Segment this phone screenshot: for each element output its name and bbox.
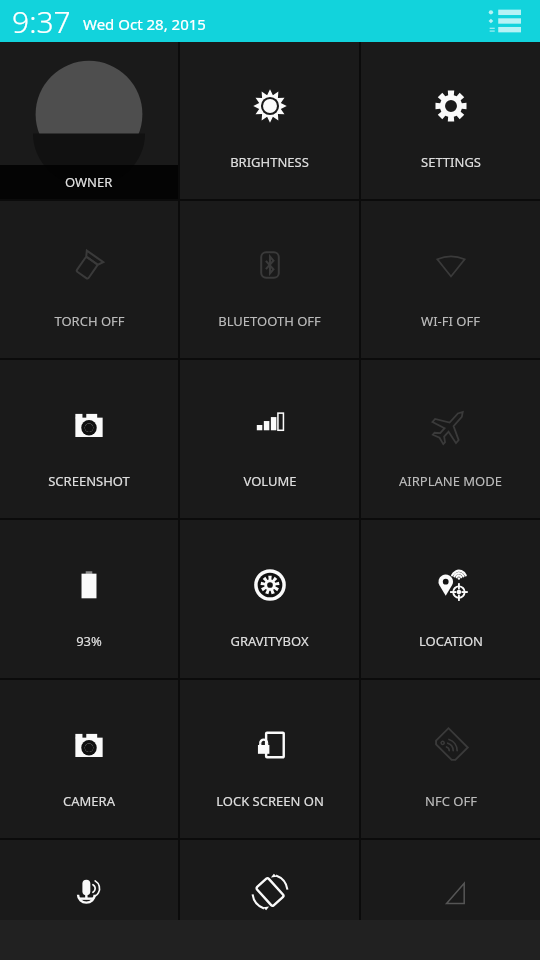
staticText: LOCK SCREEN ON <box>216 792 324 810</box>
staticText: BRIGHTNESS <box>230 153 309 171</box>
staticText: OWNER <box>65 173 113 191</box>
staticText: TORCH OFF <box>54 312 125 330</box>
staticText: BLUETOOTH OFF <box>218 312 321 330</box>
button[interactable]: SETTINGS <box>361 42 540 199</box>
button[interactable]: BRIGHTNESS <box>180 42 359 199</box>
button[interactable]: Rotation <box>180 840 359 920</box>
button[interactable]: BLUETOOTH OFF <box>180 201 359 358</box>
staticText: WI-FI OFF <box>421 312 480 330</box>
staticText: Wed Oct 28, 2015 <box>83 14 206 34</box>
staticText: CAMERA <box>63 792 115 810</box>
staticText: SETTINGS <box>421 153 481 171</box>
button[interactable]: Mobile data 3G <box>361 840 540 920</box>
staticText: LOCATION <box>419 632 483 650</box>
button[interactable]: LOCK SCREEN ON <box>180 680 359 838</box>
button[interactable]: SCREENSHOT <box>0 360 178 518</box>
staticText: NFC OFF <box>425 792 477 810</box>
button[interactable]: AIRPLANE MODE <box>361 360 540 518</box>
staticText: 9:37 <box>12 1 71 42</box>
staticText: VOLUME <box>243 472 297 490</box>
staticText: AIRPLANE MODE <box>399 472 502 490</box>
staticText: GRAVITYBOX <box>230 632 309 650</box>
button[interactable]: VOLUME <box>180 360 359 518</box>
staticText: SCREENSHOT <box>48 472 130 490</box>
staticText: 93% <box>76 632 102 650</box>
button[interactable]: TORCH OFF <box>0 201 178 358</box>
button[interactable]: WI-FI OFF <box>361 201 540 358</box>
button[interactable]: Quick settings list <box>482 4 526 38</box>
button[interactable]: CAMERA <box>0 680 178 838</box>
button[interactable]: LOCATION <box>361 520 540 678</box>
button[interactable]: OWNER <box>0 42 178 199</box>
button[interactable]: GRAVITYBOX <box>180 520 359 678</box>
button[interactable]: 93% <box>0 520 178 678</box>
button[interactable]: NFC OFF <box>361 680 540 838</box>
button[interactable]: Voice search <box>0 840 178 920</box>
